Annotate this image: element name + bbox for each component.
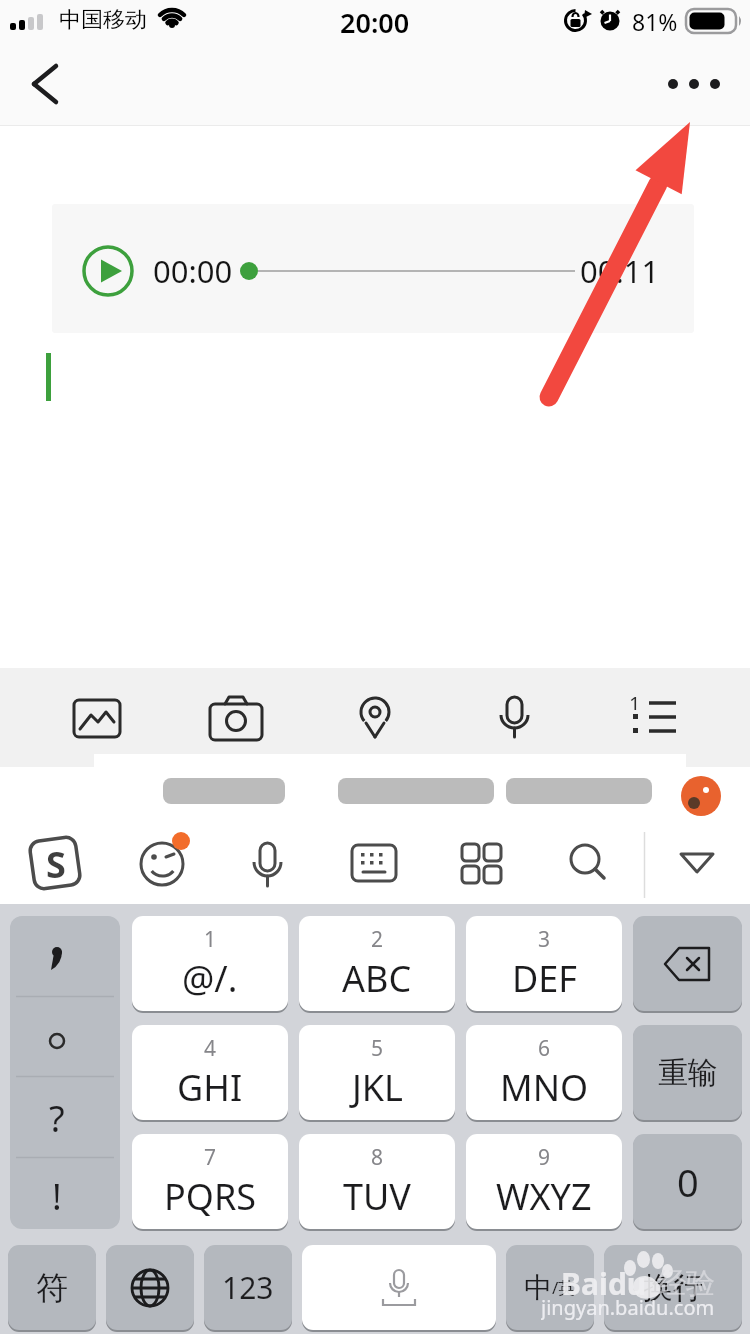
staticText: DEF	[512, 954, 577, 1003]
staticText: ABC	[342, 954, 412, 1003]
staticText: 2	[371, 925, 384, 954]
staticText: 1	[629, 690, 641, 710]
staticText: 8	[371, 1143, 384, 1172]
button[interactable]	[302, 1245, 496, 1330]
button[interactable]: 重输	[633, 1025, 742, 1120]
staticText: 5	[371, 1034, 384, 1063]
staticText: 00:00	[153, 250, 233, 292]
button[interactable]	[665, 832, 729, 896]
staticText: 重输	[658, 1054, 718, 1092]
staticText: S	[46, 840, 66, 886]
button[interactable]	[57, 678, 137, 758]
staticText: Baidu	[561, 1263, 647, 1304]
button[interactable]: 中	[506, 1245, 594, 1330]
staticText: 20:00	[340, 4, 410, 36]
button[interactable]: 7	[132, 1134, 288, 1229]
button[interactable]	[52, 204, 694, 333]
button[interactable]	[652, 56, 736, 112]
staticText: 换行	[643, 1269, 703, 1307]
staticText: 6	[538, 1034, 551, 1063]
staticText: ?	[49, 1094, 65, 1143]
staticText: 81%	[632, 6, 678, 34]
button[interactable]	[23, 832, 87, 896]
button[interactable]: 9	[466, 1134, 622, 1229]
button[interactable]	[449, 832, 513, 896]
button[interactable]	[196, 678, 276, 758]
staticText: 中国移动	[59, 6, 147, 34]
staticText: jingyan.baidu.com	[541, 1294, 715, 1320]
button[interactable]	[10, 916, 120, 1229]
staticText: 7	[204, 1143, 217, 1172]
button[interactable]: 1	[132, 916, 288, 1011]
button[interactable]	[235, 832, 299, 896]
button[interactable]: 2	[299, 916, 455, 1011]
button[interactable]	[94, 754, 686, 828]
button[interactable]	[16, 56, 80, 112]
button[interactable]: 123	[204, 1245, 292, 1330]
staticText: /英	[552, 1276, 576, 1299]
button[interactable]: 符	[8, 1245, 96, 1330]
staticText: 9	[538, 1143, 551, 1172]
button[interactable]	[342, 832, 406, 896]
button[interactable]	[130, 832, 194, 896]
staticText: @/.	[182, 954, 238, 1003]
staticText: !	[52, 1172, 62, 1221]
staticText: 4	[204, 1034, 217, 1063]
button[interactable]	[556, 832, 620, 896]
staticText: 123	[222, 1267, 274, 1308]
button[interactable]	[474, 678, 554, 758]
button[interactable]: 0	[633, 1134, 742, 1229]
button[interactable]	[106, 1245, 194, 1330]
button[interactable]: 5	[299, 1025, 455, 1120]
staticText: 经验	[657, 1265, 715, 1302]
staticText: PQRS	[164, 1172, 257, 1221]
button[interactable]: 换行	[604, 1245, 742, 1330]
button[interactable]	[613, 678, 693, 758]
button[interactable]	[335, 678, 415, 758]
staticText: TUV	[343, 1172, 411, 1221]
button[interactable]	[633, 916, 742, 1011]
staticText: GHI	[177, 1063, 243, 1112]
staticText: 符	[36, 1268, 68, 1308]
button[interactable]: 4	[132, 1025, 288, 1120]
staticText: 00:11	[580, 250, 660, 292]
staticText: 3	[538, 925, 551, 954]
staticText: MNO	[500, 1063, 589, 1112]
button[interactable]: 8	[299, 1134, 455, 1229]
staticText: 1	[204, 925, 217, 954]
button[interactable]: 6	[466, 1025, 622, 1120]
staticText: 0	[677, 1156, 699, 1208]
staticText: JKL	[352, 1063, 403, 1112]
button[interactable]: 3	[466, 916, 622, 1011]
staticText: WXYZ	[496, 1172, 592, 1221]
staticText: 中	[524, 1270, 552, 1305]
